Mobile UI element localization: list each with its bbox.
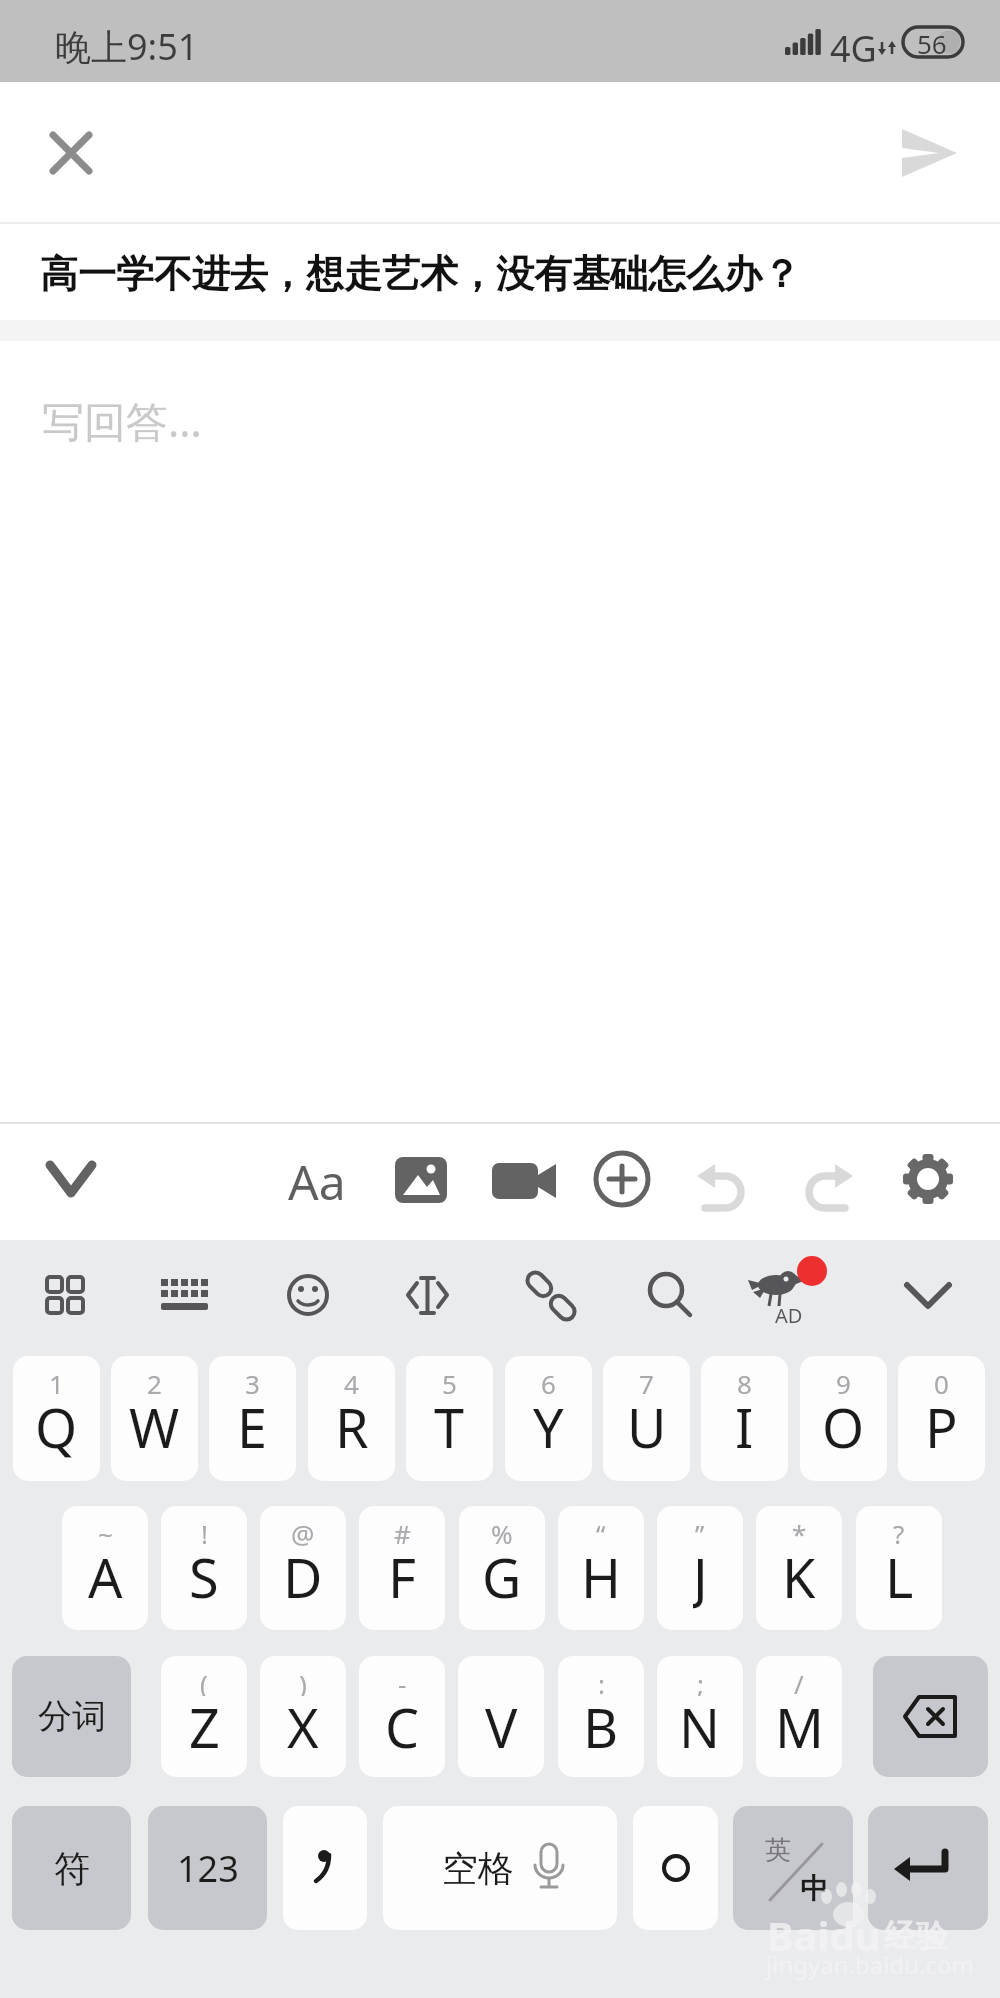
button[interactable] [633, 1806, 718, 1930]
button[interactable]: 8 [701, 1356, 788, 1481]
button[interactable] [621, 1250, 711, 1342]
staticText: Baidu [767, 1908, 881, 1962]
staticText: M [775, 1690, 824, 1762]
staticText: 8 [737, 1366, 752, 1396]
staticText: ! [201, 1516, 208, 1546]
button[interactable]: ) [260, 1656, 346, 1777]
button[interactable]: 1 [13, 1356, 100, 1481]
staticText: B [583, 1690, 619, 1762]
staticText: AD [775, 1302, 803, 1329]
button[interactable]: 9 [800, 1356, 887, 1481]
staticText: 4G [830, 24, 877, 73]
button[interactable] [675, 1131, 775, 1231]
staticText: 2 [147, 1366, 162, 1396]
button[interactable]: ; [657, 1656, 743, 1777]
staticText: : [598, 1666, 605, 1696]
button[interactable]: * [756, 1506, 842, 1630]
button[interactable]: / [756, 1656, 842, 1777]
staticText: Y [533, 1390, 564, 1462]
staticText: 经验 [884, 1916, 948, 1956]
button[interactable] [879, 103, 979, 203]
button[interactable] [371, 1131, 471, 1231]
button[interactable]: “ [558, 1506, 644, 1630]
staticText: W [129, 1390, 180, 1462]
button[interactable] [383, 1250, 473, 1342]
staticText: P [925, 1390, 958, 1462]
staticText: “ [596, 1516, 606, 1546]
button[interactable] [23, 105, 119, 201]
button[interactable] [775, 1131, 875, 1231]
button[interactable] [878, 1129, 978, 1229]
button[interactable]: 2 [111, 1356, 198, 1481]
staticText: / [794, 1666, 804, 1696]
button[interactable]: 4 [308, 1356, 395, 1481]
staticText: ; [697, 1666, 704, 1696]
button[interactable]: 英 [733, 1806, 853, 1930]
staticText: I [735, 1390, 754, 1462]
button[interactable]: ? [856, 1506, 942, 1630]
staticText: N [679, 1690, 721, 1762]
button[interactable]: 空格 [383, 1806, 617, 1930]
button[interactable] [735, 1250, 825, 1342]
button[interactable]: ~ [62, 1506, 148, 1630]
staticText: # [394, 1516, 411, 1546]
staticText: ( [200, 1666, 208, 1696]
staticText: Q [35, 1390, 78, 1462]
staticText: R [335, 1390, 369, 1462]
staticText: - [398, 1666, 407, 1696]
button[interactable] [283, 1806, 367, 1930]
staticText: A [88, 1540, 123, 1612]
staticText: U [627, 1390, 667, 1462]
button[interactable]: _ [458, 1656, 544, 1777]
button[interactable]: 分词 [12, 1656, 131, 1777]
staticText: ? [893, 1516, 905, 1546]
button[interactable]: 7 [603, 1356, 690, 1481]
staticText: X [287, 1690, 319, 1762]
staticText: * [792, 1516, 807, 1546]
staticText: V [485, 1690, 518, 1762]
button[interactable] [883, 1250, 973, 1342]
staticText: 高一学不进去，想走艺术，没有基础怎么办？ [40, 250, 800, 298]
button[interactable] [20, 1250, 110, 1342]
staticText: H [581, 1540, 622, 1612]
staticText: E [237, 1390, 268, 1462]
staticText: Aa [288, 1149, 346, 1214]
button[interactable]: @ [260, 1506, 346, 1630]
button[interactable] [263, 1250, 353, 1342]
button[interactable] [873, 1656, 988, 1777]
staticText: D [283, 1540, 323, 1612]
staticText: 3 [245, 1366, 260, 1396]
button[interactable] [141, 1250, 231, 1342]
button[interactable]: 符 [12, 1806, 131, 1930]
button[interactable]: % [459, 1506, 545, 1630]
staticText: 空格 [442, 1846, 514, 1891]
button[interactable]: ” [657, 1506, 743, 1630]
staticText: 中 [800, 1871, 828, 1906]
staticText: L [885, 1540, 914, 1612]
button[interactable]: 6 [505, 1356, 592, 1481]
button[interactable]: Aa [267, 1131, 367, 1231]
button[interactable] [21, 1131, 121, 1231]
button[interactable]: 0 [898, 1356, 985, 1481]
button[interactable]: : [558, 1656, 644, 1777]
button[interactable]: - [359, 1656, 445, 1777]
button[interactable]: 3 [209, 1356, 296, 1481]
button[interactable]: ( [161, 1656, 247, 1777]
button[interactable]: ! [161, 1506, 247, 1630]
staticText: 4 [344, 1366, 359, 1396]
button[interactable] [472, 1131, 572, 1231]
staticText: 56 [917, 26, 947, 61]
button[interactable]: # [359, 1506, 445, 1630]
button[interactable] [868, 1806, 988, 1930]
staticText: 写回答... [42, 392, 202, 449]
staticText: ” [695, 1516, 705, 1546]
button[interactable]: 123 [148, 1806, 267, 1930]
button[interactable] [572, 1131, 672, 1231]
staticText: 5 [442, 1366, 457, 1396]
staticText: 符 [54, 1846, 90, 1891]
button[interactable]: 5 [406, 1356, 493, 1481]
staticText: ) [299, 1666, 307, 1696]
button[interactable] [506, 1250, 596, 1342]
staticText: 0 [934, 1366, 949, 1396]
